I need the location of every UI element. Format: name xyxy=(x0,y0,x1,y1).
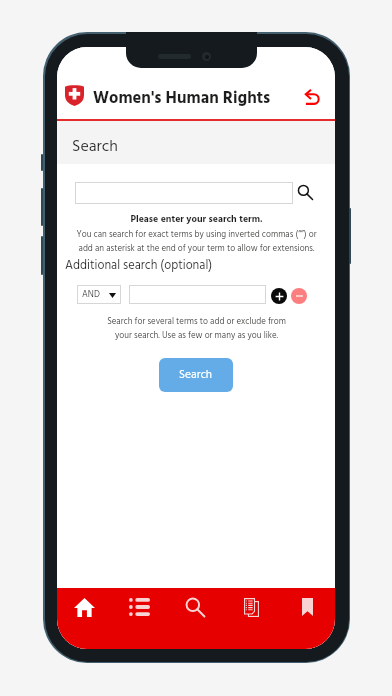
button[interactable]: Add search term xyxy=(271,288,287,304)
staticText: Search xyxy=(72,134,119,160)
button[interactable]: List xyxy=(112,588,167,626)
button[interactable]: AND xyxy=(77,285,121,304)
staticText: Search for several terms to add or exclu… xyxy=(62,315,331,329)
button[interactable]: Bookmarks xyxy=(279,588,335,626)
staticText: Please enter your search term. xyxy=(62,212,331,228)
button[interactable] xyxy=(129,285,266,304)
button[interactable]: Remove search term xyxy=(291,288,307,304)
button[interactable]: Search xyxy=(294,181,317,204)
staticText: Women's Human Rights xyxy=(93,86,271,112)
button[interactable]: Home xyxy=(57,588,112,626)
staticText: AND xyxy=(82,288,100,302)
button[interactable]: Documents xyxy=(223,588,279,626)
staticText: You can search for exact terms by using … xyxy=(62,228,331,242)
button[interactable]: Search xyxy=(167,588,223,626)
staticText: Additional search (optional) xyxy=(65,256,213,276)
button[interactable]: Back xyxy=(297,82,327,112)
staticText: your search. Use as few or many as you l… xyxy=(62,329,331,343)
button[interactable]: Search xyxy=(159,358,233,392)
button[interactable] xyxy=(75,182,293,204)
staticText: Search xyxy=(179,366,213,384)
staticText: add an asterisk at the end of your term … xyxy=(62,242,331,256)
